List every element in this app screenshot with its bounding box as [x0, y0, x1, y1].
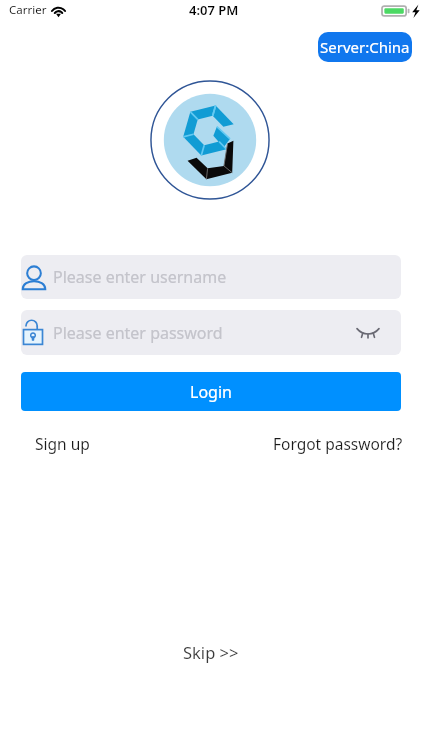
button[interactable]: Please enter username [21, 255, 401, 299]
staticText: Skip >> [183, 641, 239, 663]
staticText: Server:China [320, 37, 410, 57]
button[interactable]: Login [21, 372, 401, 411]
staticText: Forgot password? [273, 433, 403, 454]
staticText: Login [190, 381, 232, 403]
button[interactable]: Forgot password? [273, 433, 403, 454]
staticText: Please enter password [53, 322, 223, 344]
staticText: Sign up [35, 433, 90, 454]
staticText: Please enter username [53, 266, 227, 288]
button[interactable]: Skip >> [173, 637, 249, 667]
button[interactable]: Server:China [318, 32, 412, 62]
button[interactable]: Show password [345, 310, 390, 355]
button[interactable]: Sign up [35, 433, 90, 454]
staticText: Carrier [9, 2, 47, 18]
staticText: 4:07 PM [189, 1, 239, 19]
button[interactable]: Please enter password [21, 310, 401, 355]
